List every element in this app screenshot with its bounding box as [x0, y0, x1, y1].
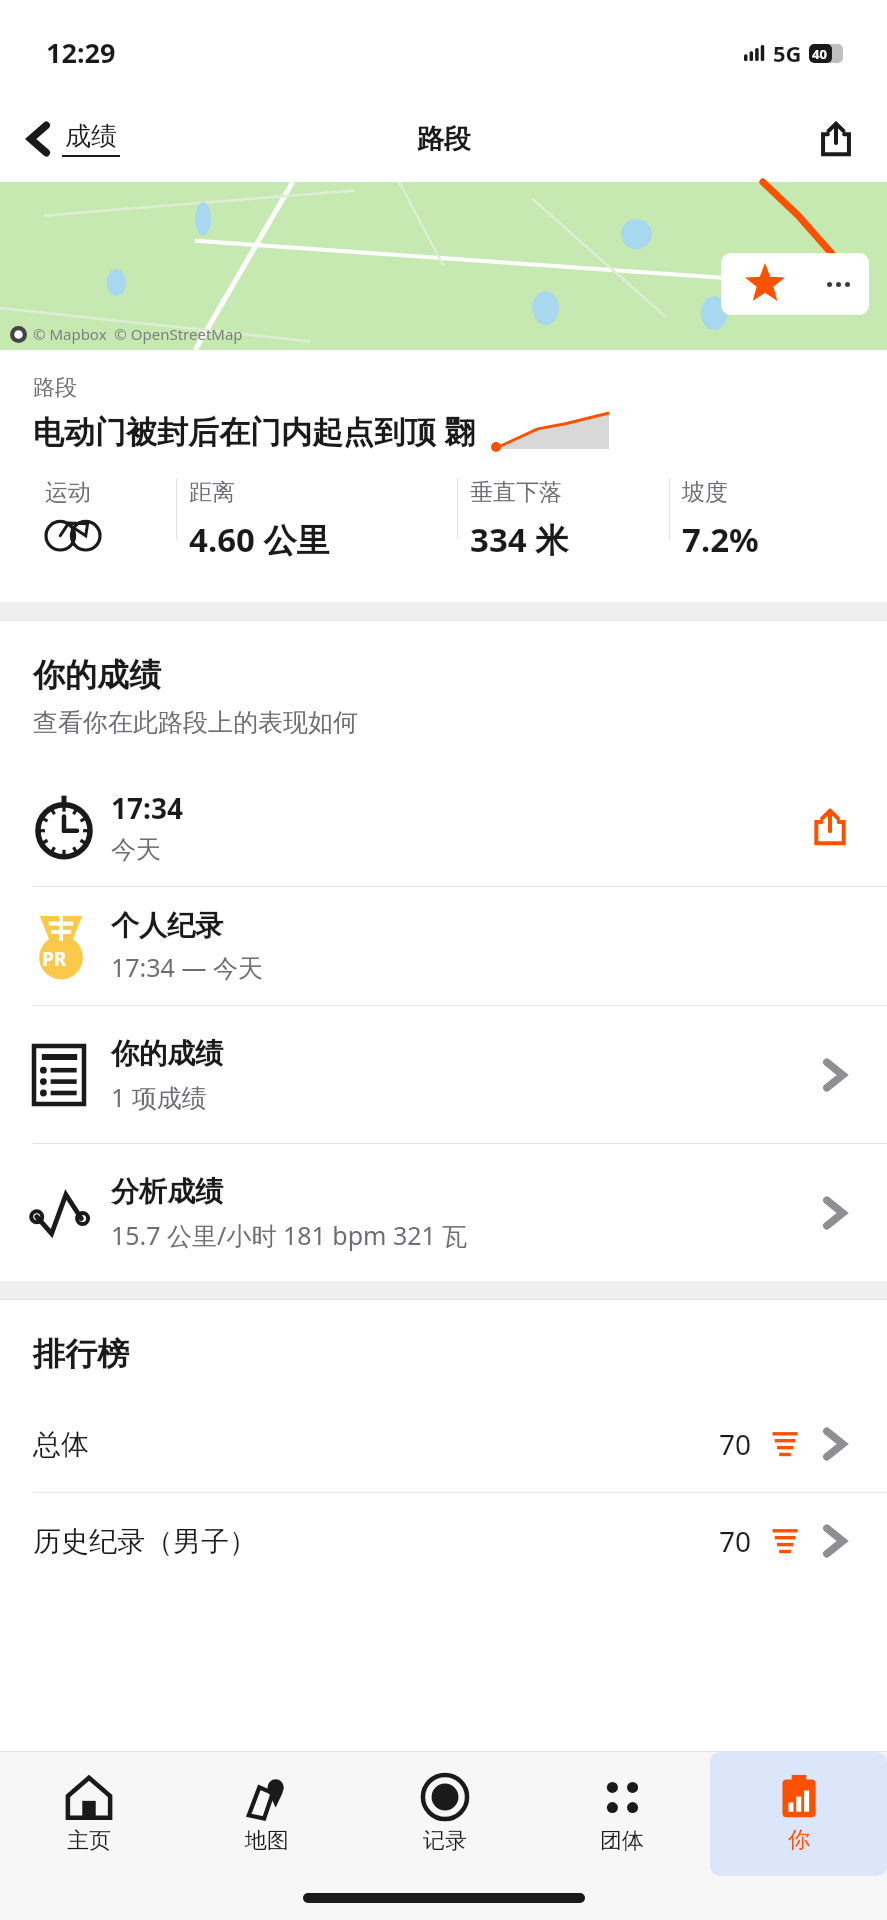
- staticText: 历史纪录（男子）: [33, 1524, 719, 1559]
- staticText: 地图: [245, 1827, 289, 1855]
- staticText: 70: [719, 1425, 752, 1463]
- staticText: 路段: [33, 374, 77, 402]
- staticText: 5G: [773, 38, 802, 68]
- staticText: 4.60 公里: [189, 517, 330, 562]
- button[interactable]: 记录: [356, 1752, 533, 1876]
- button[interactable]: 地图: [178, 1752, 356, 1876]
- button[interactable]: More options: [808, 253, 869, 315]
- staticText: 成绩: [65, 120, 117, 153]
- staticText: 排行榜: [33, 1334, 129, 1374]
- staticText: PR: [42, 946, 67, 972]
- button[interactable]: 成绩: [20, 112, 126, 165]
- button[interactable]: PR: [0, 887, 887, 1005]
- staticText: 你: [788, 1826, 810, 1854]
- staticText: © Mapbox © OpenStreetMap: [33, 324, 243, 344]
- staticText: 查看你在此路段上的表现如何: [33, 707, 358, 738]
- staticText: 334 米: [470, 517, 569, 562]
- staticText: 70: [719, 1522, 752, 1560]
- button[interactable]: 你的成绩: [0, 1006, 887, 1143]
- staticText: 15.7 公里/小时 181 bpm 321 瓦: [111, 1218, 468, 1252]
- button[interactable]: 17:34: [0, 768, 887, 886]
- staticText: 坡度: [682, 478, 728, 507]
- staticText: 分析成绩: [111, 1174, 223, 1209]
- staticText: 12:29: [46, 34, 116, 71]
- staticText: 主页: [67, 1827, 111, 1855]
- staticText: 7.2%: [682, 517, 759, 562]
- button[interactable]: Share effort: [806, 803, 854, 851]
- button[interactable]: 分析成绩: [0, 1144, 887, 1281]
- staticText: 17:34: [111, 789, 183, 827]
- staticText: 个人纪录: [111, 908, 223, 943]
- staticText: 运动: [45, 478, 91, 507]
- staticText: 电动门被封后在门内起点到顶 翾: [33, 410, 476, 452]
- staticText: 你的成绩: [111, 1036, 223, 1071]
- staticText: 垂直下落: [470, 478, 562, 507]
- staticText: 你的成绩: [33, 655, 161, 695]
- button[interactable]: 你: [710, 1752, 887, 1876]
- staticText: 1 项成绩: [111, 1080, 207, 1114]
- staticText: 总体: [33, 1427, 719, 1462]
- staticText: 40: [812, 45, 827, 63]
- staticText: 17:34 — 今天: [111, 950, 263, 984]
- staticText: 今天: [111, 834, 161, 865]
- button[interactable]: 团体: [533, 1752, 710, 1876]
- staticText: 团体: [600, 1827, 644, 1855]
- button[interactable]: 历史纪录（男子）: [0, 1493, 887, 1589]
- staticText: 距离: [189, 478, 235, 507]
- staticText: 记录: [423, 1827, 467, 1855]
- button[interactable]: 总体: [0, 1396, 887, 1492]
- button[interactable]: Star segment: [721, 253, 808, 315]
- button[interactable]: Share: [811, 114, 861, 164]
- button[interactable]: 主页: [0, 1752, 178, 1876]
- staticText: 路段: [417, 122, 471, 156]
